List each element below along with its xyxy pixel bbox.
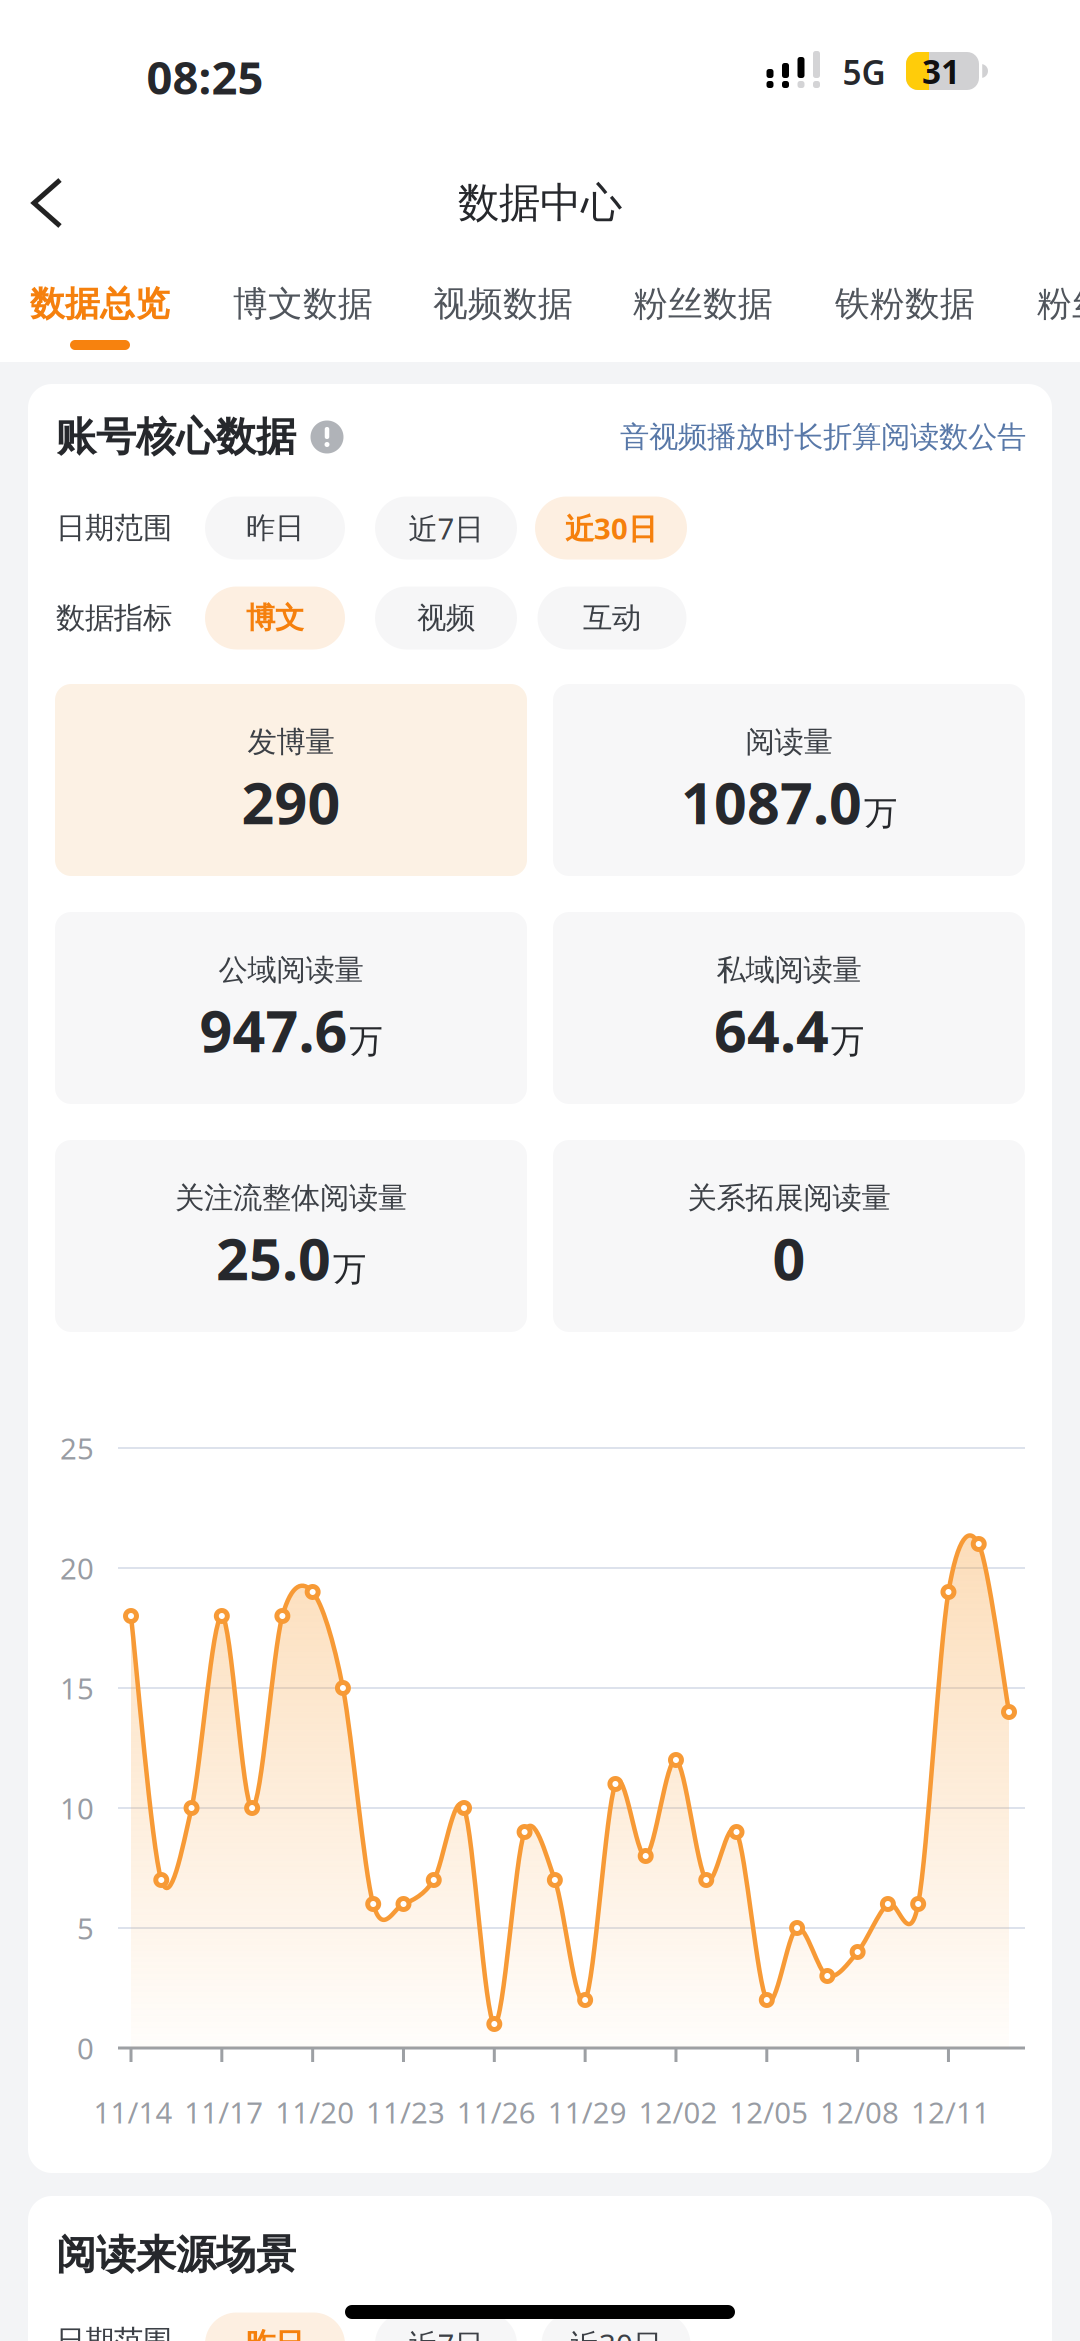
staticText: 博文数据 bbox=[233, 283, 373, 325]
staticText: 万 bbox=[349, 1021, 382, 1062]
staticText: 08:25 bbox=[146, 47, 263, 107]
staticText: 关注流整体阅读量 bbox=[175, 1180, 407, 1216]
button[interactable]: 近30日 bbox=[535, 496, 687, 559]
staticText: 11/29 bbox=[548, 2092, 627, 2131]
staticText: 0 bbox=[77, 2028, 94, 2067]
staticText: 11/23 bbox=[366, 2092, 445, 2131]
staticText: 12/02 bbox=[638, 2092, 717, 2131]
button[interactable]: 粉丝服务 bbox=[1037, 283, 1080, 325]
staticText: 博文 bbox=[246, 600, 304, 636]
staticText: 粉丝服务 bbox=[1037, 283, 1080, 325]
button[interactable]: 昨日 bbox=[205, 2312, 345, 2341]
button[interactable]: 互动 bbox=[537, 586, 686, 649]
staticText: 互动 bbox=[583, 600, 641, 636]
staticText: 近7日 bbox=[408, 508, 483, 547]
staticText: 11/26 bbox=[457, 2092, 536, 2131]
button[interactable]: 数据总览 bbox=[30, 283, 170, 325]
staticText: 发博量 bbox=[247, 724, 334, 760]
staticText: 11/14 bbox=[93, 2092, 172, 2131]
staticText: 数据指标 bbox=[56, 600, 172, 636]
staticText: 昨日 bbox=[246, 2326, 304, 2341]
button[interactable]: 昨日 bbox=[205, 496, 345, 559]
staticText: 290 bbox=[241, 764, 340, 840]
staticText: 0 bbox=[772, 1220, 805, 1296]
button[interactable]: 视频 bbox=[375, 586, 517, 649]
staticText: 5G bbox=[842, 50, 885, 94]
staticText: 1087.0 bbox=[681, 764, 862, 840]
staticText: 25 bbox=[60, 1428, 94, 1467]
staticText: 11/20 bbox=[275, 2092, 354, 2131]
staticText: 视频数据 bbox=[433, 283, 573, 325]
staticText: 日期范围 bbox=[56, 510, 172, 546]
staticText: 万 bbox=[831, 1021, 864, 1062]
staticText: 日期范围 bbox=[56, 2323, 172, 2341]
button[interactable]: 博文数据 bbox=[233, 283, 373, 325]
staticText: 近30日 bbox=[565, 508, 657, 547]
button[interactable]: 近7日 bbox=[375, 2312, 517, 2341]
staticText: 阅读量 bbox=[745, 724, 832, 760]
staticText: 15 bbox=[60, 1668, 94, 1707]
staticText: 昨日 bbox=[246, 510, 304, 546]
staticText: 31 bbox=[922, 49, 960, 93]
staticText: 关系拓展阅读量 bbox=[687, 1180, 890, 1216]
staticText: 20 bbox=[60, 1548, 94, 1587]
button[interactable]: 返回 bbox=[20, 172, 82, 234]
button[interactable]: 近30日 bbox=[541, 2312, 690, 2341]
staticText: 64.4 bbox=[714, 992, 829, 1068]
button[interactable]: 博文 bbox=[205, 586, 345, 649]
staticText: 5 bbox=[77, 1908, 94, 1947]
button[interactable]: 近7日 bbox=[375, 496, 517, 559]
staticText: 12/05 bbox=[729, 2092, 808, 2131]
staticText: 947.6 bbox=[199, 992, 347, 1068]
staticText: 25.0 bbox=[216, 1220, 331, 1296]
staticText: 阅读来源场景 bbox=[56, 2230, 296, 2279]
button[interactable]: 视频数据 bbox=[433, 283, 573, 325]
staticText: 私域阅读量 bbox=[716, 952, 861, 988]
staticText: 公域阅读量 bbox=[218, 952, 363, 988]
button[interactable]: 铁粉数据 bbox=[835, 283, 975, 325]
staticText: 近7日 bbox=[408, 2324, 483, 2341]
staticText: 10 bbox=[60, 1788, 94, 1827]
staticText: 数据总览 bbox=[30, 283, 170, 325]
button[interactable]: 说明 bbox=[310, 420, 343, 453]
staticText: 12/11 bbox=[911, 2092, 990, 2131]
staticText: 数据中心 bbox=[458, 178, 622, 228]
staticText: 铁粉数据 bbox=[835, 283, 975, 325]
staticText: 万 bbox=[333, 1249, 366, 1290]
staticText: 近30日 bbox=[570, 2324, 662, 2341]
button[interactable]: 粉丝数据 bbox=[633, 283, 773, 325]
staticText: 万 bbox=[864, 793, 897, 834]
staticText: 12/08 bbox=[820, 2092, 899, 2131]
staticText: 账号核心数据 bbox=[56, 412, 296, 461]
staticText: 11/17 bbox=[184, 2092, 263, 2131]
staticText: 音视频播放时长折算阅读数公告 bbox=[620, 419, 1026, 455]
button[interactable]: 音视频播放时长折算阅读数公告 bbox=[566, 419, 1026, 455]
staticText: 粉丝数据 bbox=[633, 283, 773, 325]
staticText: 视频 bbox=[417, 600, 475, 636]
